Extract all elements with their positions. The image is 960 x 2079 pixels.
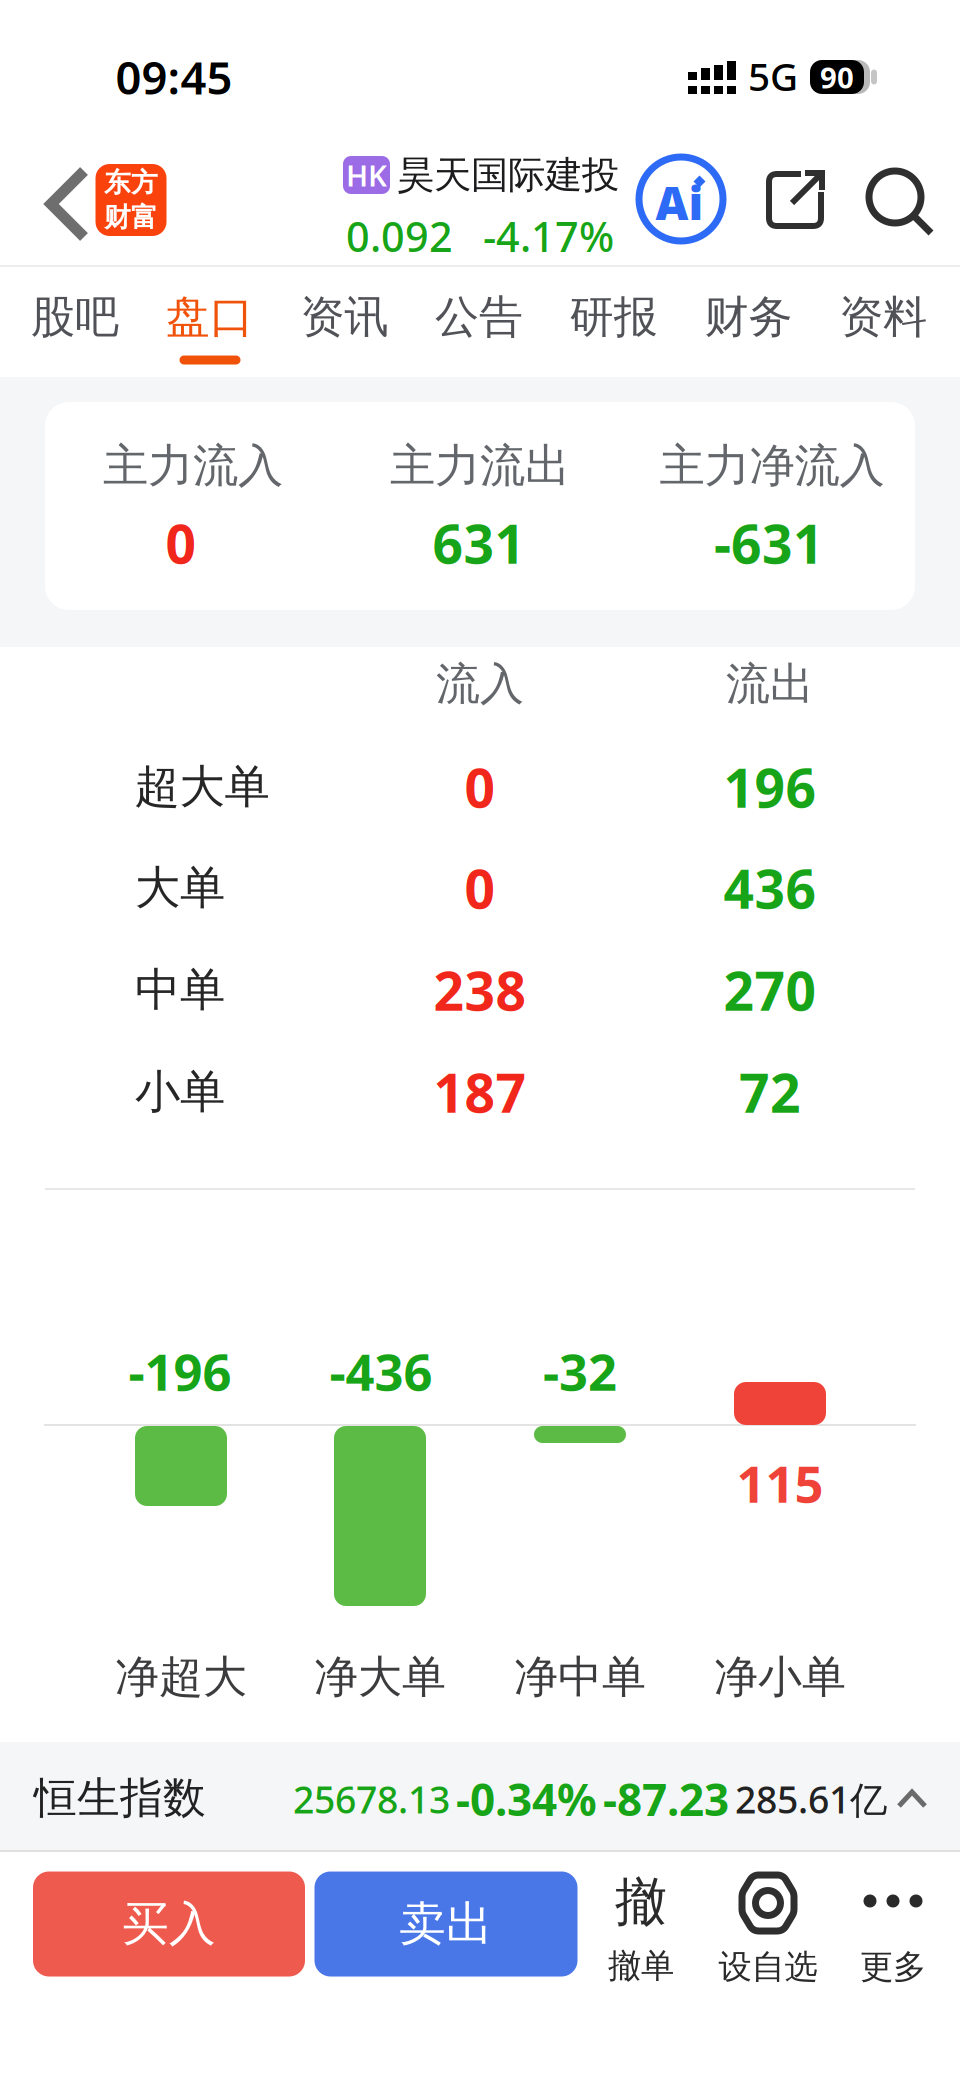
staticText: 187: [433, 1057, 526, 1127]
staticText: 净超大: [115, 1650, 247, 1704]
staticText: 90: [820, 57, 854, 96]
staticText: 115: [736, 1449, 823, 1517]
button[interactable]: 东方财富: [95, 164, 166, 236]
staticText: 631: [432, 508, 525, 578]
staticText: 东方: [104, 166, 158, 199]
staticText: 72: [739, 1057, 801, 1127]
staticText: 财富: [104, 201, 158, 234]
staticText: 285.61亿: [735, 1774, 887, 1824]
staticText: 股吧: [31, 290, 119, 344]
staticText: -436: [329, 1337, 432, 1405]
staticText: -32: [543, 1337, 617, 1405]
staticText: -4.17%: [483, 209, 614, 263]
staticText: 196: [723, 752, 816, 822]
staticText: 盘口: [166, 290, 254, 344]
button[interactable]: 买入: [33, 1871, 305, 1976]
staticText: 净小单: [714, 1650, 846, 1704]
staticText: 资讯: [300, 290, 388, 344]
staticText: -0.34%: [456, 1770, 597, 1828]
button[interactable]: 盘口: [145, 265, 275, 369]
staticText: 撤: [615, 1870, 667, 1934]
staticText: 25678.13: [293, 1774, 450, 1824]
staticText: -196: [128, 1337, 231, 1405]
staticText: 恒生指数: [34, 1772, 206, 1824]
button[interactable]: 研报: [549, 265, 679, 369]
button[interactable]: Share: [765, 170, 825, 230]
button[interactable]: 股吧: [10, 265, 140, 369]
staticText: 设自选: [718, 1946, 817, 1987]
staticText: 主力流出: [390, 438, 570, 494]
staticText: 中单: [135, 962, 225, 1018]
staticText: 流入: [436, 657, 524, 711]
staticText: 更多: [860, 1946, 926, 1987]
staticText: 09:45: [115, 47, 232, 107]
button[interactable]: 资料: [818, 265, 948, 369]
staticText: 0: [165, 508, 196, 578]
staticText: 小单: [135, 1064, 225, 1120]
staticText: 主力净流入: [659, 438, 884, 494]
staticText: 撤单: [608, 1945, 674, 1986]
staticText: 资料: [839, 290, 927, 344]
button[interactable]: Back: [44, 166, 90, 242]
staticText: 270: [723, 955, 816, 1025]
button[interactable]: Search: [865, 167, 935, 237]
staticText: 5G: [748, 50, 798, 102]
staticText: 净大单: [314, 1650, 446, 1704]
staticText: 净中单: [514, 1650, 646, 1704]
button[interactable]: Ai: [635, 153, 726, 244]
staticText: Ai: [655, 172, 703, 233]
staticText: 0: [464, 853, 495, 923]
staticText: -87.23: [603, 1770, 729, 1828]
staticText: 买入: [122, 1895, 216, 1953]
staticText: 卖出: [399, 1895, 493, 1953]
staticText: 0.092: [346, 209, 453, 263]
staticText: 公告: [435, 290, 523, 344]
staticText: 流出: [726, 657, 814, 711]
staticText: 超大单: [134, 759, 269, 815]
staticText: 大单: [135, 860, 225, 916]
staticText: HK: [346, 155, 387, 194]
staticText: 238: [433, 955, 526, 1025]
button[interactable]: 更多: [838, 1852, 948, 2002]
staticText: 研报: [570, 290, 658, 344]
staticText: 436: [723, 853, 816, 923]
staticText: 昊天国际建投: [397, 152, 619, 198]
staticText: 财务: [704, 290, 792, 344]
button[interactable]: 财务: [683, 265, 813, 369]
button[interactable]: 卖出: [314, 1871, 577, 1976]
staticText: 主力流入: [103, 438, 283, 494]
button[interactable]: 撤单: [581, 1852, 701, 2002]
button[interactable]: 设自选: [698, 1852, 838, 2002]
button[interactable]: 资讯: [279, 265, 409, 369]
staticText: -631: [714, 508, 824, 578]
staticText: 0: [464, 752, 495, 822]
button[interactable]: 公告: [414, 265, 544, 369]
button[interactable]: 恒生指数: [0, 1742, 960, 1850]
